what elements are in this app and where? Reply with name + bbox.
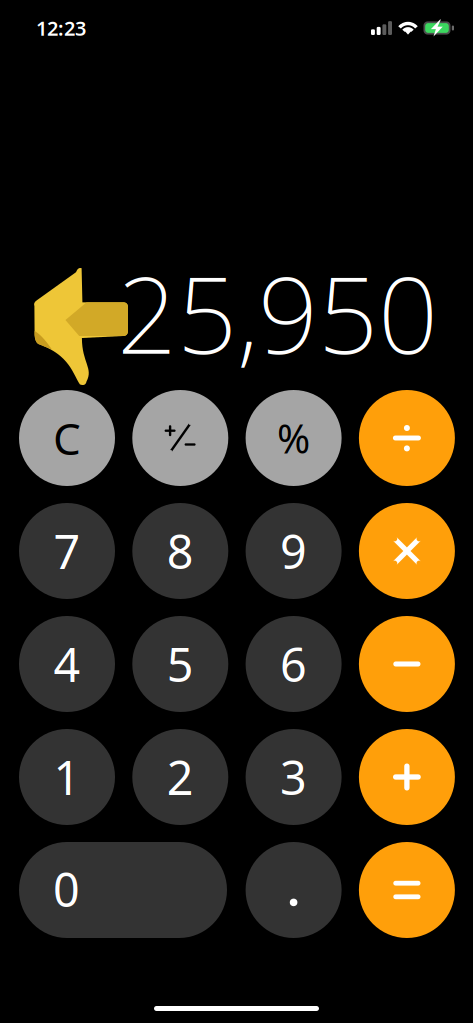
button[interactable]: Equals xyxy=(359,842,455,938)
button[interactable]: Divide xyxy=(359,390,455,486)
button[interactable]: % xyxy=(246,390,342,486)
button[interactable]: 6 xyxy=(246,616,342,712)
staticText: % xyxy=(277,411,310,464)
button[interactable]: 0 xyxy=(19,842,227,938)
button[interactable]: 7 xyxy=(19,503,115,599)
button[interactable]: Subtract xyxy=(359,616,455,712)
button[interactable]: 8 xyxy=(132,503,228,599)
staticText: 5 xyxy=(167,633,194,695)
button[interactable]: 4 xyxy=(19,616,115,712)
button[interactable]: 5 xyxy=(132,616,228,712)
button[interactable]: C xyxy=(19,390,115,486)
button[interactable]: Multiply xyxy=(359,503,455,599)
staticText: 9 xyxy=(280,520,307,582)
button[interactable]: Plus or minus xyxy=(132,390,228,486)
staticText: 1 xyxy=(53,746,80,808)
button[interactable]: 2 xyxy=(132,729,228,825)
staticText: C xyxy=(53,409,81,467)
button[interactable]: 9 xyxy=(246,503,342,599)
staticText: 25,950 xyxy=(117,243,438,383)
staticText: 0 xyxy=(53,858,80,920)
staticText: 8 xyxy=(167,520,194,582)
staticText: 12:23 xyxy=(36,15,86,41)
button[interactable]: Decimal point xyxy=(246,842,342,938)
staticText: 2 xyxy=(167,746,194,808)
staticText: 3 xyxy=(280,746,307,808)
button[interactable]: 1 xyxy=(19,729,115,825)
staticText: 6 xyxy=(280,633,307,695)
button[interactable]: 3 xyxy=(246,729,342,825)
staticText: 4 xyxy=(53,633,80,695)
button[interactable]: Add xyxy=(359,729,455,825)
staticText: 7 xyxy=(53,520,80,582)
